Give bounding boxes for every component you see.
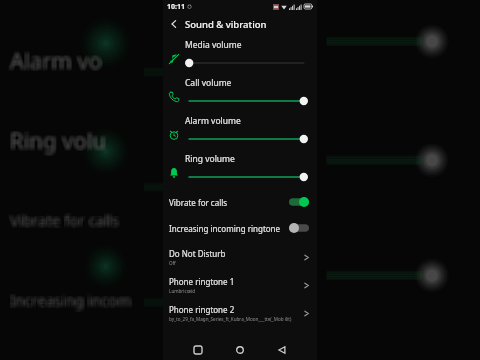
staticText: Ring volu bbox=[10, 123, 106, 153]
staticText: Vibrate for calls bbox=[169, 197, 289, 208]
staticText: Vibrate for calls bbox=[9, 209, 119, 229]
staticText: Increasing incom bbox=[8, 291, 130, 311]
staticText: Alarm vo bbox=[9, 47, 101, 77]
staticText: by_to_29_fa_Magn_Series_ft_Kubra_Moon___… bbox=[169, 316, 292, 322]
staticText: Increasing incom bbox=[9, 288, 131, 308]
staticText: Vibrate for calls bbox=[11, 209, 121, 229]
staticText: Ring volu bbox=[8, 125, 104, 155]
staticText: Vibrate for calls bbox=[9, 212, 119, 232]
staticText: Ring volu bbox=[11, 125, 107, 155]
staticText: Vibrate for calls bbox=[12, 212, 122, 232]
button[interactable]: Alarm volume bbox=[163, 111, 317, 149]
staticText: Ring volu bbox=[8, 124, 104, 154]
staticText: Vibrate for calls bbox=[12, 209, 122, 229]
staticText: Sound & vibration bbox=[185, 18, 267, 31]
staticText: Off bbox=[169, 260, 176, 266]
staticText: Increasing incom bbox=[12, 290, 134, 310]
staticText: Alarm vo bbox=[12, 47, 104, 77]
staticText: Vibrate for calls bbox=[8, 210, 118, 230]
staticText: Phone ringtone 2 bbox=[169, 304, 235, 315]
staticText: Increasing incom bbox=[9, 289, 131, 309]
staticText: Alarm vo bbox=[10, 44, 102, 74]
staticText: Ring volume bbox=[185, 153, 235, 165]
button[interactable]: Phone ringtone 2 bbox=[163, 299, 317, 327]
staticText: Ring volu bbox=[11, 126, 107, 156]
staticText: Vibrate for calls bbox=[12, 210, 122, 230]
staticText: Ring volu bbox=[12, 127, 108, 157]
staticText: Vibrate for calls bbox=[10, 210, 120, 230]
staticText: Ring volu bbox=[9, 127, 105, 157]
staticText: Alarm vo bbox=[11, 43, 103, 73]
staticText: Increasing incom bbox=[11, 292, 133, 312]
staticText: Increasing incoming ringtone bbox=[169, 223, 289, 234]
staticText: Increasing incom bbox=[11, 290, 133, 310]
staticText: Alarm vo bbox=[12, 44, 104, 74]
button[interactable]: Vibrate for calls bbox=[163, 189, 317, 215]
staticText: Alarm volume bbox=[185, 115, 241, 127]
staticText: Increasing incom bbox=[11, 289, 133, 309]
staticText: Alarm vo bbox=[9, 44, 101, 74]
staticText: Phone ringtone 1 bbox=[169, 276, 235, 287]
staticText: Ring volu bbox=[8, 123, 104, 153]
staticText: Increasing incom bbox=[12, 292, 134, 312]
staticText: Ring volu bbox=[10, 126, 106, 156]
staticText: Vibrate for calls bbox=[10, 208, 120, 228]
staticText: Alarm vo bbox=[10, 45, 102, 75]
staticText: Increasing incom bbox=[12, 289, 134, 309]
staticText: Increasing incom bbox=[9, 292, 131, 312]
staticText: Vibrate for calls bbox=[10, 212, 120, 232]
staticText: Alarm vo bbox=[8, 47, 100, 77]
staticText: Vibrate for calls bbox=[10, 209, 120, 229]
staticText: Vibrate for calls bbox=[9, 211, 119, 231]
staticText: Alarm vo bbox=[9, 43, 101, 73]
button[interactable]: Back bbox=[271, 340, 293, 360]
staticText: Alarm vo bbox=[8, 46, 100, 76]
staticText: Ring volu bbox=[12, 124, 108, 154]
button[interactable]: Media volume bbox=[163, 35, 317, 73]
staticText: Ring volu bbox=[9, 124, 105, 154]
staticText: Ring volu bbox=[8, 127, 104, 157]
staticText: Ring volu bbox=[12, 123, 108, 153]
staticText: Media volume bbox=[185, 39, 242, 51]
staticText: Ring volu bbox=[12, 126, 108, 156]
staticText: Alarm vo bbox=[11, 45, 103, 75]
staticText: Increasing incom bbox=[12, 288, 134, 308]
button[interactable]: Recent apps bbox=[187, 340, 209, 360]
staticText: Ring volu bbox=[12, 125, 108, 155]
staticText: Ring volu bbox=[9, 125, 105, 155]
staticText: Ring volu bbox=[9, 123, 105, 153]
staticText: Alarm vo bbox=[9, 46, 101, 76]
staticText: Alarm vo bbox=[8, 44, 100, 74]
staticText: Alarm vo bbox=[11, 46, 103, 76]
button[interactable]: Do Not Disturb bbox=[163, 243, 317, 271]
staticText: Increasing incom bbox=[10, 291, 132, 311]
staticText: Alarm vo bbox=[10, 47, 102, 77]
staticText: Increasing incom bbox=[8, 290, 130, 310]
staticText: Lumbricœid bbox=[169, 288, 196, 294]
button[interactable]: Home bbox=[229, 340, 251, 360]
staticText: Vibrate for calls bbox=[8, 212, 118, 232]
staticText: Increasing incom bbox=[11, 291, 133, 311]
staticText: Increasing incom bbox=[10, 288, 132, 308]
staticText: Alarm vo bbox=[12, 45, 104, 75]
staticText: Alarm vo bbox=[10, 43, 102, 73]
button[interactable]: Increasing incoming ringtone bbox=[163, 215, 317, 241]
staticText: Ring volu bbox=[10, 127, 106, 157]
staticText: Alarm vo bbox=[11, 47, 103, 77]
staticText: Increasing incom bbox=[9, 291, 131, 311]
button[interactable]: Ring volume bbox=[163, 149, 317, 187]
staticText: Vibrate for calls bbox=[11, 211, 121, 231]
button[interactable]: Phone ringtone 1 bbox=[163, 271, 317, 299]
staticText: Increasing incom bbox=[10, 292, 132, 312]
staticText: Alarm vo bbox=[12, 43, 104, 73]
staticText: Vibrate for calls bbox=[9, 208, 119, 228]
staticText: Increasing incom bbox=[10, 290, 132, 310]
staticText: Call volume bbox=[185, 77, 232, 89]
staticText: Vibrate for calls bbox=[11, 208, 121, 228]
staticText: Vibrate for calls bbox=[8, 209, 118, 229]
button[interactable]: Back bbox=[163, 13, 185, 35]
staticText: Vibrate for calls bbox=[11, 212, 121, 232]
button[interactable]: Call volume bbox=[163, 73, 317, 111]
staticText: Ring volu bbox=[10, 125, 106, 155]
staticText: Increasing incom bbox=[9, 290, 131, 310]
